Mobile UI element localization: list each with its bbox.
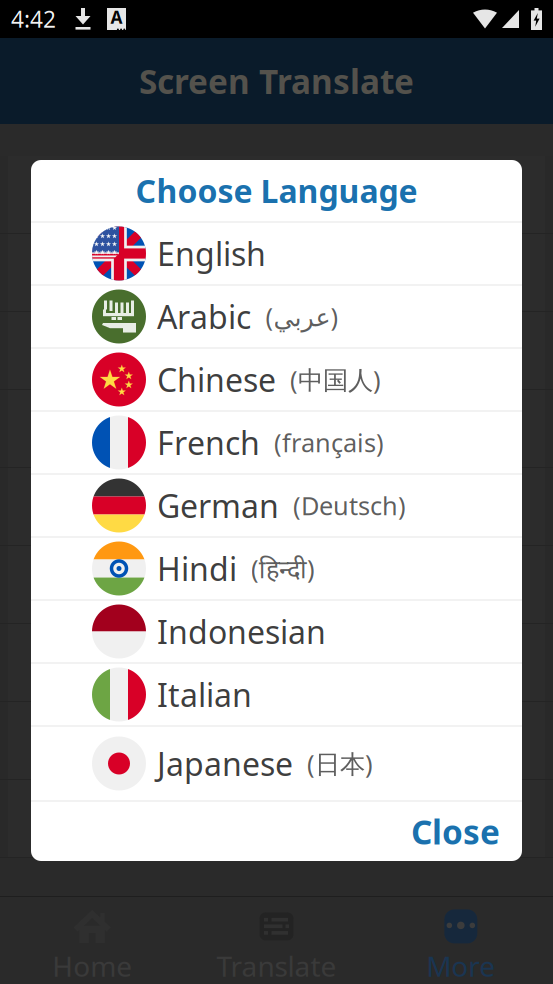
staticText: ★ <box>117 385 127 397</box>
button[interactable]: Arabic <box>31 285 522 348</box>
staticText: (Deutsch) <box>293 489 406 522</box>
staticText: Choose Language <box>135 169 417 212</box>
button[interactable]: Hindi <box>31 537 522 600</box>
staticText: ★★★★ <box>93 248 117 256</box>
staticText: A <box>110 5 122 28</box>
button[interactable]: Indonesian <box>31 600 522 663</box>
staticText: Close <box>411 809 500 854</box>
staticText: ★ <box>124 369 134 381</box>
button[interactable]: Japanese <box>31 726 522 801</box>
staticText: Japanese <box>157 742 293 785</box>
button[interactable]: ★ <box>31 348 522 411</box>
staticText: More <box>426 947 495 984</box>
button[interactable]: More <box>369 896 553 984</box>
staticText: French <box>157 421 260 464</box>
staticText: ★ <box>98 364 122 395</box>
staticText: Home <box>52 947 132 984</box>
staticText: (中国人) <box>290 363 381 396</box>
staticText: Chinese <box>157 358 276 401</box>
staticText: German <box>157 484 279 527</box>
staticText: ★★★★ <box>93 232 117 240</box>
staticText: (français) <box>274 426 384 459</box>
staticText: ★ <box>117 362 127 374</box>
button[interactable]: ★★★★ <box>31 222 522 285</box>
button[interactable]: French <box>31 411 522 474</box>
staticText: Italian <box>157 673 252 716</box>
staticText: 4:42 <box>11 4 56 34</box>
staticText: (हिन्दी) <box>251 552 315 585</box>
button[interactable]: Close <box>389 801 522 861</box>
staticText: ★ <box>124 378 134 390</box>
staticText: English <box>157 232 266 275</box>
staticText: ★★★★ <box>93 224 117 231</box>
staticText: Arabic <box>157 295 251 338</box>
staticText: (عربي) <box>265 300 338 333</box>
button[interactable]: Italian <box>31 663 522 726</box>
button[interactable]: Translate <box>184 896 369 984</box>
staticText: ★★★★ <box>93 240 117 248</box>
staticText: Translate <box>216 947 336 984</box>
staticText: (日本) <box>307 747 373 780</box>
button[interactable]: German <box>31 474 522 537</box>
staticText: Hindi <box>157 547 237 590</box>
staticText: Indonesian <box>157 610 326 653</box>
staticText: Screen Translate <box>139 59 414 103</box>
